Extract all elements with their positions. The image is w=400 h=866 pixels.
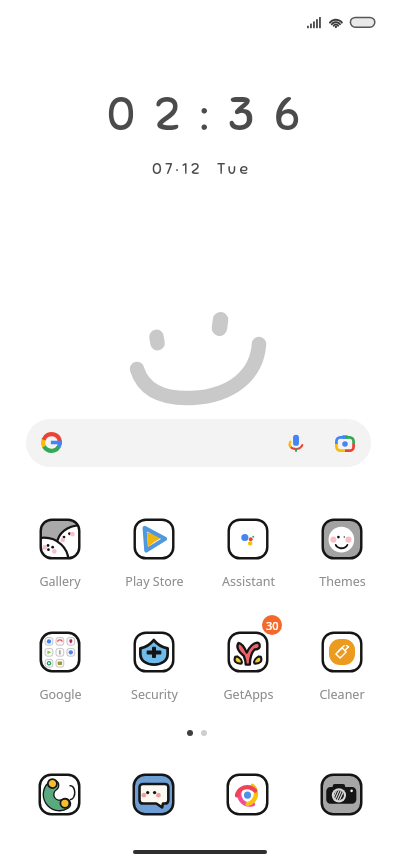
staticText: 02:36: [107, 86, 320, 143]
button[interactable]: Messages: [132, 773, 175, 816]
button[interactable]: Themes: [297, 518, 387, 590]
button[interactable]: Assistant: [203, 518, 293, 590]
staticText: Assistant: [222, 573, 275, 590]
button[interactable]: GetApps: [203, 631, 293, 703]
button[interactable]: Phone: [38, 773, 81, 816]
staticText: GetApps: [223, 686, 274, 703]
staticText: Google: [39, 686, 82, 703]
button[interactable]: Security: [109, 631, 199, 703]
button[interactable]: [26, 419, 371, 467]
staticText: Security: [131, 686, 178, 703]
staticText: Play Store: [125, 573, 184, 590]
staticText: Gallery: [39, 573, 81, 590]
button[interactable]: Camera: [320, 773, 363, 816]
button[interactable]: Gallery: [15, 518, 105, 590]
staticText: 30: [266, 618, 279, 633]
button[interactable]: Play Store: [109, 518, 199, 590]
button[interactable]: Cleaner: [297, 631, 387, 703]
button[interactable]: Google: [15, 631, 105, 703]
staticText: 07·12 Tue: [152, 159, 252, 179]
staticText: Themes: [319, 573, 366, 590]
staticText: Cleaner: [319, 686, 365, 703]
button[interactable]: Photos: [226, 773, 269, 816]
